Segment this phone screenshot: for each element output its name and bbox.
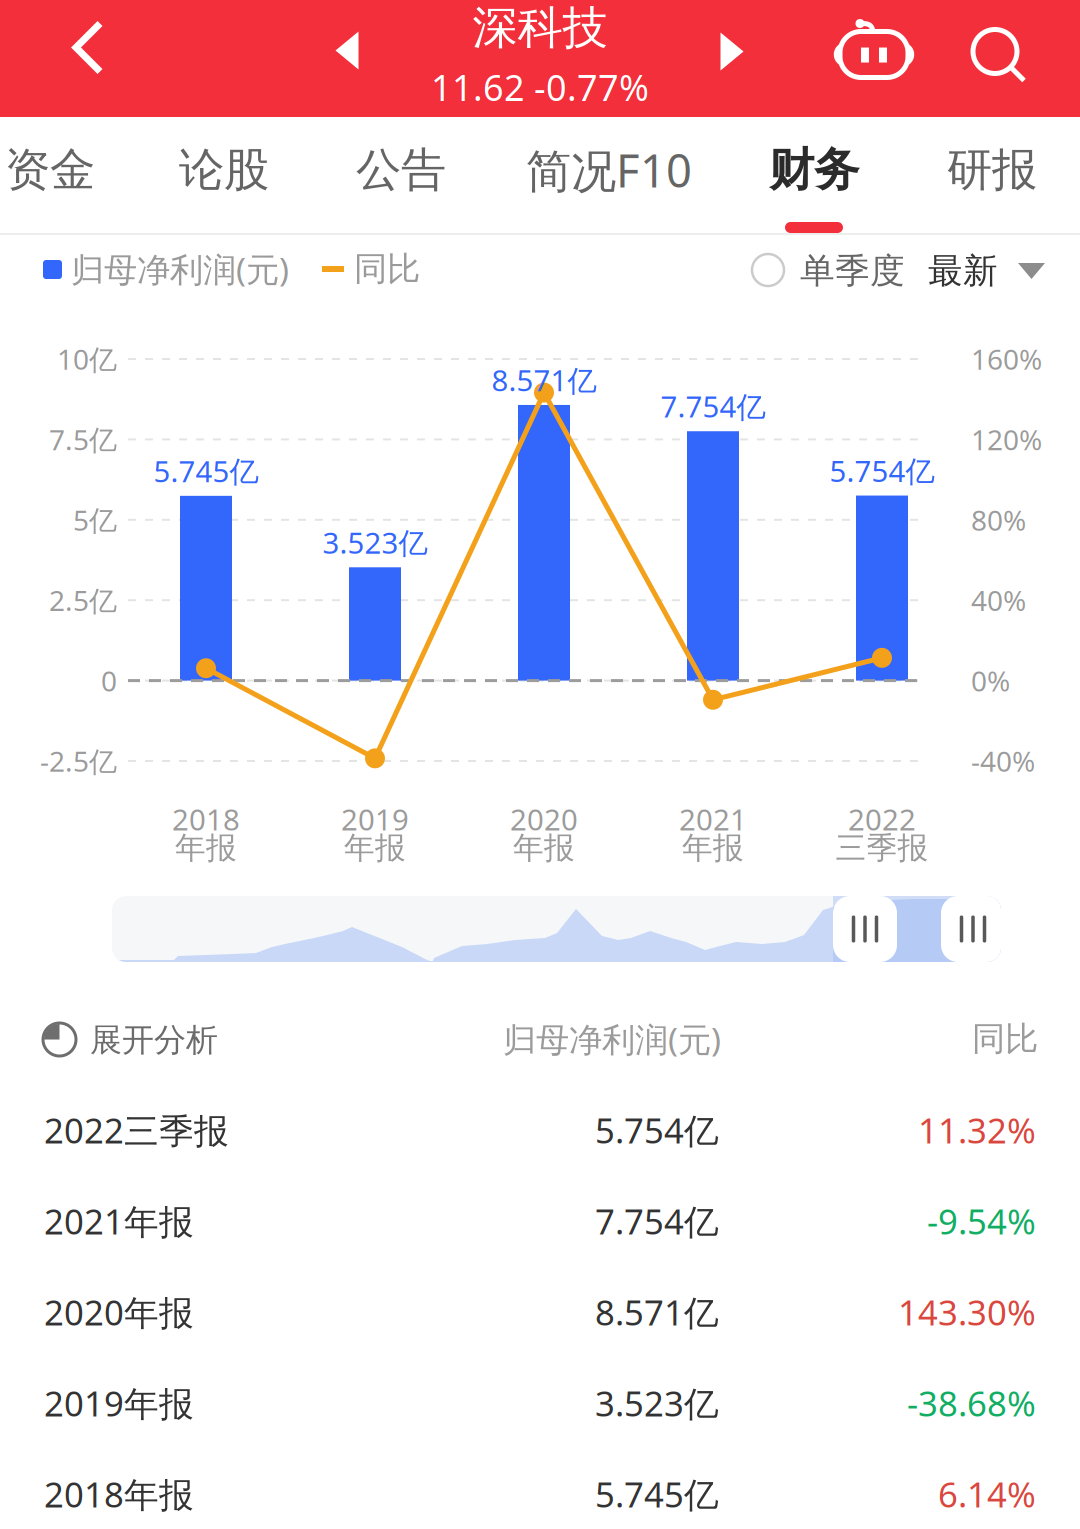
- staticText: 公告: [356, 142, 446, 198]
- staticText: 2020: [510, 799, 578, 838]
- staticText: 2020年报: [44, 1289, 194, 1335]
- staticText: 深科技: [472, 0, 607, 56]
- staticText: 143.30%: [898, 1289, 1036, 1335]
- button[interactable]: Range start: [833, 896, 897, 962]
- staticText: 年报: [175, 829, 237, 867]
- staticText: 年报: [682, 829, 744, 867]
- staticText: 0: [101, 662, 117, 699]
- staticText: 8.571亿: [595, 1289, 719, 1335]
- button[interactable]: 论股: [139, 117, 309, 233]
- staticText: 2022三季报: [44, 1107, 229, 1153]
- button[interactable]: 研报: [907, 117, 1077, 233]
- staticText: 2021年报: [44, 1198, 194, 1244]
- staticText: 归母净利润(元): [503, 1017, 721, 1061]
- staticText: 80%: [971, 501, 1026, 538]
- staticText: 归母净利润(元): [71, 247, 289, 291]
- button[interactable]: Range end: [941, 896, 1005, 962]
- staticText: 40%: [971, 582, 1026, 619]
- button[interactable]: 2020年报: [0, 1267, 1080, 1358]
- staticText: 2018年报: [44, 1471, 194, 1517]
- staticText: 7.754亿: [595, 1198, 719, 1244]
- button[interactable]: 2019年报: [0, 1358, 1080, 1449]
- staticText: 同比: [972, 1018, 1038, 1059]
- staticText: 2019: [341, 799, 409, 838]
- staticText: 单季度: [800, 250, 905, 292]
- staticText: -40%: [971, 742, 1035, 780]
- staticText: 2.5亿: [49, 582, 117, 619]
- button[interactable]: 2022三季报: [0, 1085, 1080, 1176]
- button[interactable]: 展开分析: [0, 1004, 260, 1074]
- button[interactable]: 资金: [0, 117, 135, 233]
- button[interactable]: Search: [950, 0, 1050, 115]
- staticText: 5.754亿: [829, 451, 934, 490]
- staticText: 10亿: [57, 340, 117, 378]
- staticText: 0%: [971, 662, 1010, 699]
- staticText: 简况F10: [526, 140, 692, 200]
- staticText: 2021: [679, 799, 747, 838]
- button[interactable]: AI assistant: [824, 0, 924, 109]
- staticText: 同比: [354, 248, 420, 289]
- staticText: 11.32%: [918, 1107, 1036, 1153]
- staticText: 论股: [179, 142, 269, 198]
- button[interactable]: Next stock: [697, 0, 767, 110]
- staticText: 11.62 -0.77%: [431, 63, 649, 111]
- staticText: 财务: [769, 142, 859, 198]
- button[interactable]: Previous stock: [312, 0, 382, 109]
- staticText: -38.68%: [907, 1380, 1036, 1426]
- staticText: 7.754亿: [660, 387, 765, 426]
- staticText: 2022: [848, 799, 916, 838]
- button[interactable]: 简况F10: [524, 117, 694, 233]
- staticText: 120%: [971, 421, 1042, 458]
- staticText: -9.54%: [927, 1198, 1036, 1244]
- staticText: 年报: [344, 829, 406, 867]
- staticText: 三季报: [835, 829, 928, 867]
- staticText: -2.5亿: [40, 742, 117, 780]
- staticText: 7.5亿: [49, 421, 117, 458]
- staticText: 2019年报: [44, 1380, 194, 1426]
- staticText: 2018: [172, 799, 240, 838]
- button[interactable]: 单季度: [752, 240, 942, 300]
- staticText: 3.523亿: [322, 523, 427, 562]
- staticText: 8.571亿: [491, 360, 596, 399]
- staticText: 3.523亿: [595, 1380, 719, 1426]
- button[interactable]: 最新: [928, 240, 1058, 300]
- staticText: 5.745亿: [595, 1471, 719, 1517]
- staticText: 年报: [513, 829, 575, 867]
- staticText: 研报: [947, 142, 1037, 198]
- staticText: 6.14%: [938, 1471, 1036, 1517]
- button[interactable]: 2018年报: [0, 1449, 1080, 1529]
- staticText: 5.745亿: [153, 451, 258, 490]
- staticText: 资金: [5, 142, 95, 198]
- staticText: 5亿: [73, 501, 117, 538]
- button[interactable]: Back: [33, 0, 143, 106]
- button[interactable]: 2021年报: [0, 1176, 1080, 1267]
- button[interactable]: 公告: [316, 117, 486, 233]
- staticText: 展开分析: [90, 1020, 218, 1060]
- staticText: 5.754亿: [595, 1107, 719, 1153]
- staticText: 160%: [971, 340, 1042, 378]
- button[interactable]: 财务: [729, 117, 899, 233]
- staticText: 最新: [928, 250, 998, 292]
